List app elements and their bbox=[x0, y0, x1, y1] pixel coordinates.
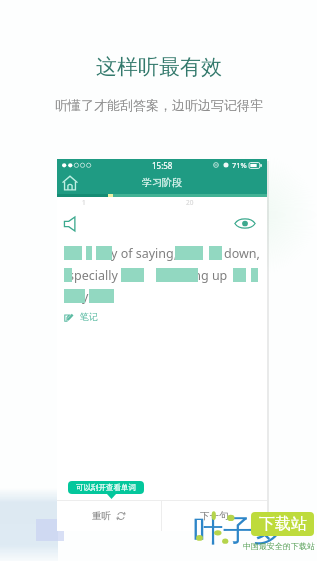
staticText: 重听 bbox=[92, 510, 111, 522]
staticText: 71% bbox=[232, 160, 247, 170]
staticText: 叶子多 bbox=[193, 512, 283, 550]
button[interactable]: Play audio bbox=[63, 216, 81, 232]
staticText: 笔记 bbox=[80, 311, 98, 322]
staticText: y. bbox=[82, 288, 92, 305]
staticText: 15:58 bbox=[152, 160, 173, 171]
staticText: down, bbox=[224, 245, 260, 262]
button[interactable]: Home bbox=[62, 175, 78, 191]
staticText: 1 bbox=[82, 198, 86, 207]
staticText: 这样听最有效 bbox=[96, 54, 222, 80]
button[interactable]: 笔记 bbox=[64, 311, 98, 322]
button[interactable]: 下一句 bbox=[162, 501, 267, 531]
button[interactable]: 重听 bbox=[57, 501, 161, 531]
staticText: 中国最安全的下载站 bbox=[243, 541, 315, 551]
button[interactable]: 可以刮开查看单词 bbox=[68, 481, 144, 494]
staticText: y of saying, bbox=[111, 245, 178, 262]
staticText: 学习阶段 bbox=[142, 176, 182, 189]
staticText: 20 bbox=[186, 198, 194, 207]
staticText: 可以刮开查看单词 bbox=[76, 483, 136, 492]
button[interactable]: Reveal answer bbox=[234, 217, 256, 230]
staticText: 听懂了才能刮答案，边听边写记得牢 bbox=[55, 97, 263, 113]
staticText: 下一句 bbox=[200, 510, 229, 522]
staticText: 下载站 bbox=[259, 514, 307, 534]
staticText: specially bbox=[68, 267, 118, 284]
staticText: ing up bbox=[190, 267, 228, 284]
